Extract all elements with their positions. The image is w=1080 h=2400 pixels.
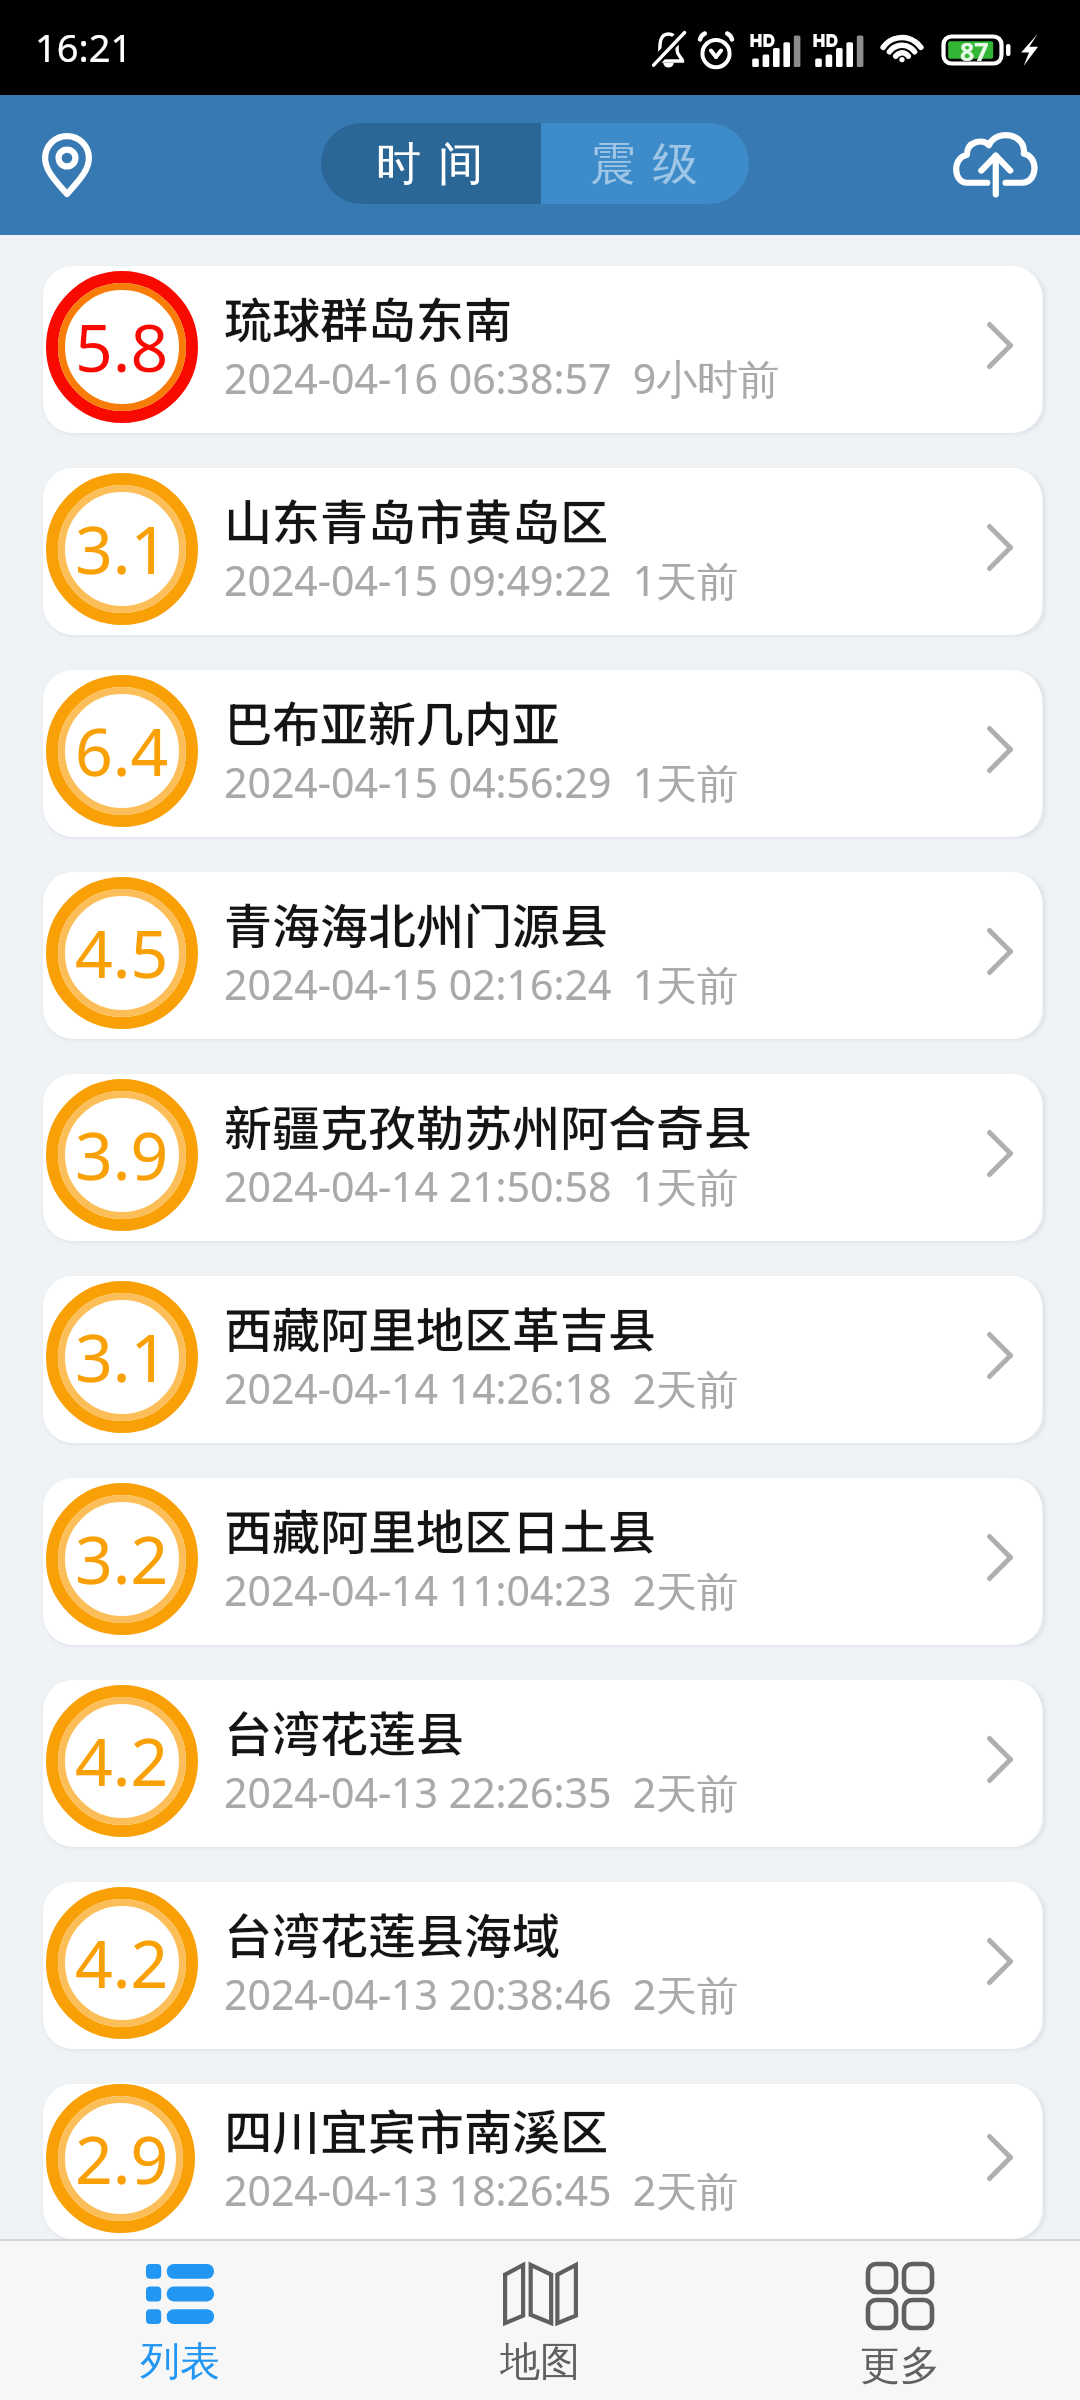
staticText: 2024-04-13 22:26:35 2天前: [224, 1764, 739, 1820]
staticText: 87: [960, 34, 989, 64]
staticText: 4.5: [75, 907, 169, 997]
staticText: 2024-04-13 18:26:45 2天前: [224, 2162, 739, 2218]
staticText: 巴布亚新几内亚: [224, 686, 561, 756]
staticText: 2024-04-13 20:38:46 2天前: [224, 1966, 739, 2022]
staticText: 山东青岛市黄岛区: [224, 484, 609, 554]
button[interactable]: [43, 468, 1042, 635]
staticText: 时 间: [376, 131, 487, 192]
staticText: 2024-04-15 02:16:24 1天前: [224, 956, 739, 1012]
staticText: 4.2: [75, 1917, 169, 2007]
staticText: 3.9: [75, 1109, 169, 1199]
staticText: 列表: [140, 2336, 220, 2386]
button[interactable]: [43, 266, 1042, 433]
button[interactable]: 列表: [0, 2241, 360, 2400]
staticText: 2024-04-14 21:50:58 1天前: [224, 1158, 739, 1214]
button[interactable]: [43, 1882, 1042, 2049]
staticText: 5.8: [75, 301, 169, 391]
staticText: 2024-04-16 06:38:57 9小时前: [224, 350, 780, 406]
staticText: 台湾花莲县: [224, 1696, 465, 1766]
staticText: 2024-04-14 11:04:23 2天前: [224, 1562, 739, 1618]
button[interactable]: Location: [22, 120, 112, 210]
staticText: 更多: [860, 2340, 940, 2390]
staticText: 琉球群岛东南: [224, 282, 513, 352]
button[interactable]: 时 间: [321, 123, 541, 204]
staticText: 16:21: [35, 21, 133, 73]
button[interactable]: [43, 1478, 1042, 1645]
button[interactable]: [43, 1074, 1042, 1241]
staticText: 西藏阿里地区日土县: [224, 1494, 657, 1564]
staticText: 西藏阿里地区革吉县: [224, 1292, 657, 1362]
button[interactable]: [43, 1680, 1042, 1847]
staticText: 2024-04-15 04:56:29 1天前: [224, 754, 739, 810]
staticText: 6.4: [75, 705, 169, 795]
button[interactable]: [43, 670, 1042, 837]
staticText: 3.1: [75, 1311, 169, 1401]
staticText: 4.2: [75, 1715, 169, 1805]
button[interactable]: [43, 2084, 1042, 2239]
staticText: 震 级: [590, 131, 701, 192]
staticText: 台湾花莲县海域: [224, 1898, 561, 1968]
button[interactable]: 地图: [360, 2241, 720, 2400]
staticText: 四川宜宾市南溪区: [224, 2094, 609, 2164]
button[interactable]: 更多: [720, 2241, 1080, 2400]
button[interactable]: [43, 1276, 1042, 1443]
staticText: 青海海北州门源县: [224, 888, 609, 958]
staticText: 2024-04-14 14:26:18 2天前: [224, 1360, 739, 1416]
staticText: 地图: [500, 2336, 580, 2386]
button[interactable]: Upload: [939, 110, 1049, 220]
staticText: 3.2: [75, 1513, 169, 1603]
staticText: 2.9: [75, 2113, 169, 2203]
staticText: 新疆克孜勒苏州阿合奇县: [224, 1090, 753, 1160]
button[interactable]: [43, 872, 1042, 1039]
staticText: 2024-04-15 09:49:22 1天前: [224, 552, 739, 608]
staticText: 3.1: [75, 503, 169, 593]
button[interactable]: 震 级: [541, 123, 749, 204]
